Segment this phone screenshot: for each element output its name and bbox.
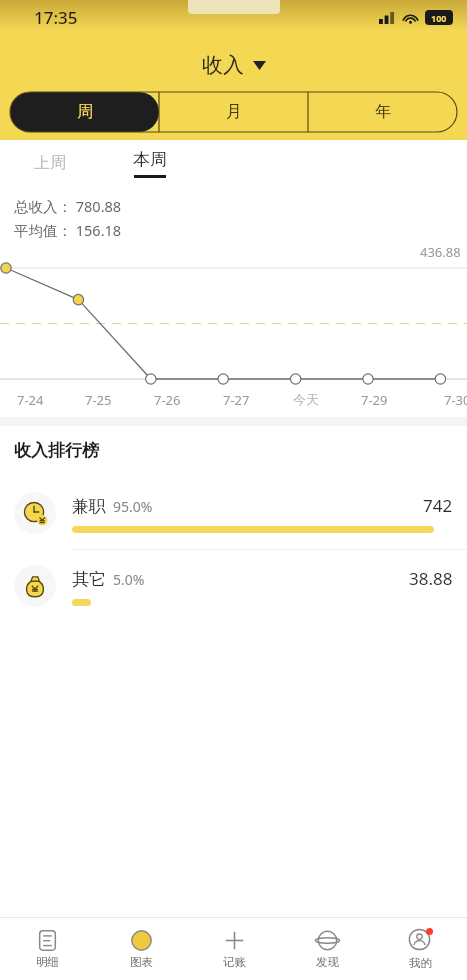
staticText: 17:35 bbox=[34, 6, 78, 29]
button[interactable]: 我的 bbox=[374, 918, 467, 980]
staticText: 明细 bbox=[36, 955, 59, 969]
staticText: 图表 bbox=[130, 955, 153, 969]
button[interactable]: 本周 bbox=[100, 140, 200, 186]
staticText: 我的 bbox=[409, 956, 432, 970]
button[interactable]: 记账 bbox=[188, 918, 281, 980]
staticText: 7-26 bbox=[154, 391, 181, 409]
staticText: 7-27 bbox=[223, 391, 250, 409]
staticText: 上周 bbox=[34, 153, 66, 173]
staticText: 436.88 bbox=[420, 243, 461, 261]
button[interactable]: 图表 bbox=[94, 918, 188, 980]
staticText: 本周 bbox=[133, 149, 167, 170]
staticText: 7-24 bbox=[17, 391, 44, 409]
button[interactable]: 上周 bbox=[0, 140, 100, 186]
button[interactable]: 周 bbox=[10, 92, 159, 132]
button[interactable]: 月 bbox=[159, 92, 308, 132]
staticText: 5.0% bbox=[113, 570, 145, 589]
button[interactable]: 收入 bbox=[202, 52, 266, 78]
button[interactable]: 年 bbox=[308, 92, 457, 132]
staticText: 年 bbox=[375, 102, 391, 122]
button[interactable]: 发现 bbox=[281, 918, 374, 980]
staticText: 平均值： 156.18 bbox=[14, 220, 122, 240]
staticText: 收入排行榜 bbox=[14, 440, 99, 461]
staticText: 月 bbox=[226, 102, 242, 122]
staticText: 100 bbox=[431, 12, 447, 24]
staticText: 95.0% bbox=[113, 497, 153, 516]
button[interactable]: 其它 bbox=[0, 550, 467, 622]
staticText: 今天 bbox=[293, 391, 319, 407]
staticText: 7-30 bbox=[444, 391, 467, 409]
staticText: 7-29 bbox=[361, 391, 388, 409]
staticText: 记账 bbox=[223, 955, 246, 969]
staticText: 38.88 bbox=[409, 567, 453, 590]
staticText: 发现 bbox=[316, 955, 339, 969]
staticText: 兼职 bbox=[72, 496, 106, 517]
staticText: 周 bbox=[77, 102, 93, 122]
button[interactable]: 兼职 bbox=[0, 477, 467, 549]
staticText: 7-25 bbox=[85, 391, 112, 409]
staticText: 其它 bbox=[72, 569, 106, 590]
staticText: 收入 bbox=[202, 52, 244, 78]
staticText: 742 bbox=[423, 494, 453, 517]
staticText: 总收入： 780.88 bbox=[14, 196, 122, 216]
button[interactable]: 明细 bbox=[0, 918, 94, 980]
